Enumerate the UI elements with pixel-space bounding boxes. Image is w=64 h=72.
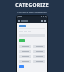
button[interactable] bbox=[19, 25, 26, 27]
button[interactable]: Save bbox=[19, 65, 24, 68]
button[interactable]: Menu bbox=[18, 20, 28, 22]
button[interactable]: Category item bbox=[33, 50, 45, 53]
button[interactable]: Category item bbox=[19, 50, 31, 53]
button[interactable]: Category item bbox=[33, 55, 45, 58]
button[interactable]: Category item bbox=[33, 60, 45, 63]
button[interactable]: Category item bbox=[19, 55, 31, 58]
button[interactable]: Category item bbox=[19, 60, 31, 63]
button[interactable]: Add category bbox=[19, 39, 25, 42]
staticText: CATEGORIZE bbox=[0, 2, 64, 9]
button[interactable]: Category item bbox=[19, 45, 31, 48]
staticText: Try fast & well categorize bbox=[0, 10, 64, 13]
button[interactable]: Category item bbox=[33, 45, 45, 48]
